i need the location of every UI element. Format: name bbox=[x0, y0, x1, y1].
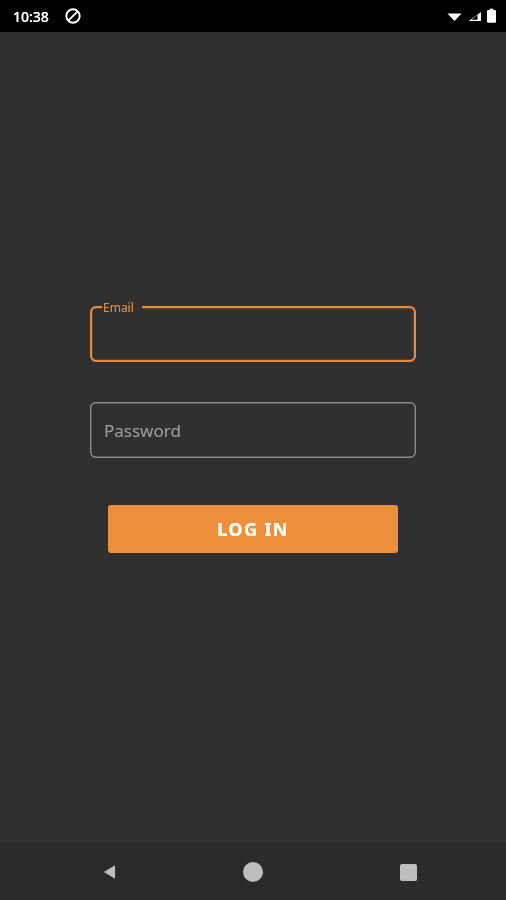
button[interactable]: Password bbox=[90, 402, 416, 458]
button[interactable]: Home bbox=[229, 848, 277, 896]
button[interactable]: Back bbox=[86, 848, 134, 896]
staticText: 10:38 bbox=[13, 7, 49, 26]
staticText: LOG IN bbox=[217, 517, 289, 542]
button[interactable]: LOG IN bbox=[108, 505, 398, 553]
button[interactable]: Email bbox=[90, 306, 416, 362]
button[interactable]: Recent apps bbox=[384, 848, 432, 896]
staticText: Email bbox=[103, 299, 134, 315]
staticText: Password bbox=[104, 419, 181, 442]
